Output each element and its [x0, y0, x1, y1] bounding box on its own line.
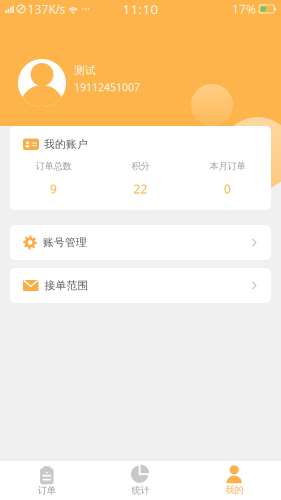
staticText: 11:10	[122, 0, 158, 18]
staticText: 测试	[74, 64, 96, 77]
staticText: 我的	[225, 484, 243, 496]
staticText: 账号管理	[43, 236, 87, 249]
staticText: 19112451007	[74, 80, 140, 94]
button[interactable]: 接单范围	[10, 268, 271, 303]
staticText: 22	[133, 181, 147, 197]
staticText: 137K/s	[27, 1, 65, 17]
button[interactable]: 我的	[187, 461, 281, 500]
button[interactable]: 订单	[0, 461, 94, 500]
staticText: 本月订单	[209, 160, 245, 172]
staticText: 订单	[38, 485, 56, 496]
staticText: 9	[50, 181, 57, 197]
staticText: 我的账户	[44, 138, 88, 151]
staticText: 接单范围	[44, 279, 88, 292]
button[interactable]: 统计	[94, 461, 187, 500]
staticText: 订单总数	[35, 160, 71, 172]
button[interactable]: 账号管理	[10, 225, 271, 260]
staticText: 积分	[131, 160, 149, 172]
staticText: 17%	[232, 1, 256, 17]
staticText: 统计	[131, 485, 149, 496]
staticText: 0	[224, 181, 231, 197]
